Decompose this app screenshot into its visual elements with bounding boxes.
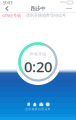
staticText: ，请到开阔地带等待信号 — [22, 13, 66, 18]
button[interactable]: 锁屏 — [31, 102, 38, 111]
staticText: 即将开始 — [30, 52, 46, 57]
button[interactable]: 音乐 — [25, 102, 31, 111]
staticText: 跑步中 — [30, 5, 45, 12]
staticText: 0:20 — [24, 57, 52, 76]
button[interactable]: 设置 — [44, 102, 51, 111]
staticText: ••• — [60, 0, 66, 6]
button[interactable]: Back — [2, 5, 12, 12]
staticText: 音乐 — [25, 107, 31, 111]
staticText: 拍照 — [38, 107, 44, 111]
button[interactable]: 拍照 — [38, 102, 44, 111]
staticText: 9:41 — [3, 0, 13, 6]
staticText: 设置 — [45, 107, 51, 111]
staticText: 锁屏 — [32, 107, 38, 111]
button[interactable]: More — [64, 5, 74, 12]
staticText: GPS信号弱 — [2, 13, 21, 18]
